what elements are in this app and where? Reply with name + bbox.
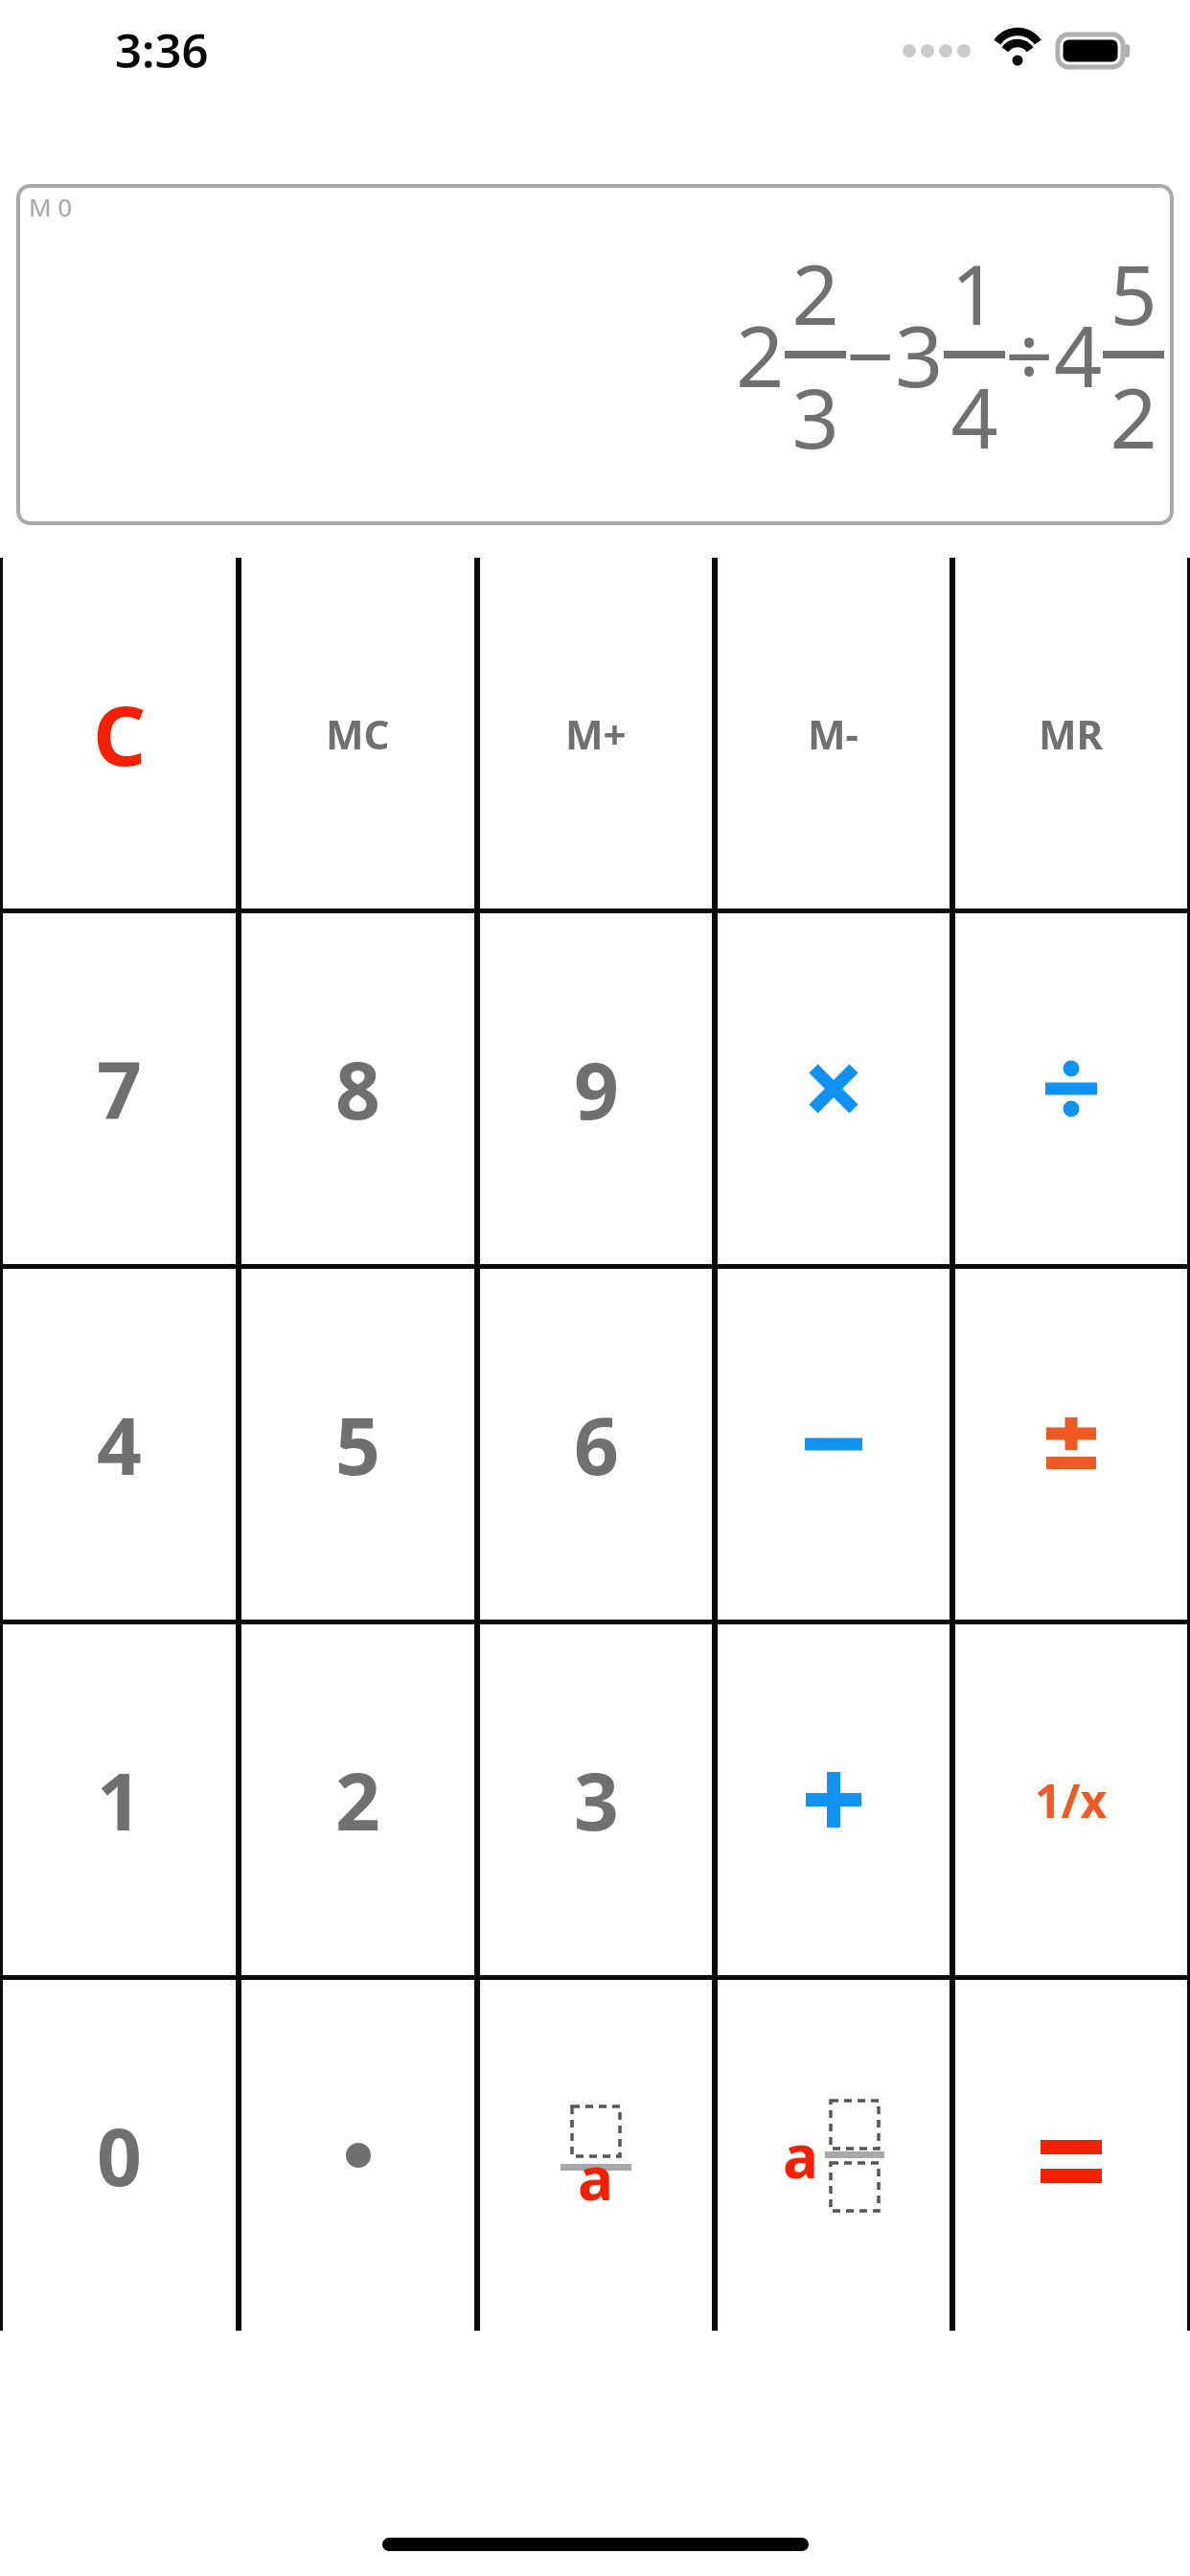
staticText: M 0 [29,190,73,223]
button[interactable]: 2 [241,1624,474,1975]
button[interactable]: 7 [3,913,236,1264]
staticText: − [846,297,895,412]
button[interactable]: Minus [718,1269,950,1620]
other: Multiply [805,1060,862,1117]
staticText: ÷ [1005,297,1054,412]
staticText: 1 [97,1746,142,1853]
button[interactable]: M- [718,558,950,908]
button[interactable]: M 0 [16,184,1174,525]
staticText: 2 [1110,360,1157,472]
staticText: 1/x [1035,1769,1108,1831]
staticText: 6 [574,1391,619,1498]
button[interactable]: Multiply [718,913,950,1264]
staticText: 5 [335,1391,380,1498]
staticText: 2 [335,1746,380,1853]
button[interactable]: 0 [3,1980,236,2331]
button[interactable]: M+ [480,558,712,908]
other: Mixed fraction [762,2088,905,2222]
staticText: M- [808,706,859,761]
staticText: 2 [736,297,785,412]
staticText: 3:36 [115,18,209,82]
staticText: 3 [791,360,839,472]
button[interactable]: 1 [3,1624,236,1975]
other: Minus [805,1430,862,1459]
other: Plus minus [1044,1417,1098,1471]
staticText: MC [326,706,390,761]
staticText: 8 [335,1035,380,1142]
button[interactable]: Divide [955,913,1187,1264]
button[interactable]: Mixed fraction [718,1980,950,2331]
button[interactable]: 1/x [955,1624,1187,1975]
button[interactable]: Equals [955,1980,1187,2331]
button[interactable]: MC [241,558,474,908]
staticText: 4 [97,1391,142,1498]
staticText: 3 [574,1746,619,1853]
other: Plus [806,1772,861,1828]
staticText: 3 [895,297,944,412]
staticText: a [578,2137,614,2218]
button[interactable]: C [3,558,236,908]
staticText: 9 [574,1035,619,1142]
staticText: C [93,678,147,790]
staticText: 4 [950,360,998,472]
button[interactable]: 5 [241,1269,474,1620]
other: Equals [1041,2132,1102,2178]
button[interactable]: 9 [480,913,712,1264]
button[interactable]: Plus [718,1624,950,1975]
button[interactable]: 8 [241,913,474,1264]
button[interactable]: 6 [480,1269,712,1620]
staticText: 5 [1110,237,1157,349]
staticText: 0 [97,2102,142,2209]
button[interactable]: MR [955,558,1187,908]
staticText: 7 [97,1035,142,1142]
staticText: MR [1039,706,1104,761]
other: Divide [1041,1059,1101,1118]
other: Decimal point [346,2143,371,2168]
staticText: 1 [950,237,998,349]
staticText: 2 [791,237,839,349]
button[interactable]: Fraction with variable denominator [480,1980,712,2331]
staticText: a [783,2115,819,2196]
staticText: 4 [1054,297,1103,412]
button[interactable]: Decimal point [241,1980,474,2331]
staticText: M+ [565,706,627,761]
button[interactable]: 3 [480,1624,712,1975]
button[interactable]: 4 [3,1269,236,1620]
other: Fraction with variable denominator [538,2093,653,2218]
button[interactable]: Plus minus [955,1269,1187,1620]
